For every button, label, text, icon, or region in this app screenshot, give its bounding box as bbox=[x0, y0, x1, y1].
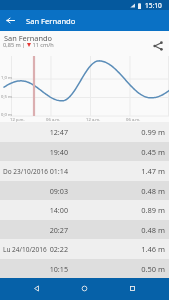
button[interactable]: 09:03 bbox=[0, 181, 169, 201]
staticText: 0.48 m bbox=[141, 186, 165, 196]
staticText: 1.46 m bbox=[141, 244, 165, 254]
button[interactable]: 19:40 bbox=[0, 142, 169, 162]
button[interactable]: Share bbox=[147, 35, 169, 57]
staticText: San Fernando bbox=[26, 16, 76, 26]
button[interactable]: 20:27 bbox=[0, 220, 169, 240]
button[interactable]: Back bbox=[20, 278, 52, 299]
staticText: 0.48 m bbox=[141, 225, 165, 235]
button[interactable]: 14:00 bbox=[0, 200, 169, 220]
staticText: 09:03 bbox=[0, 186, 68, 196]
staticText: 20:27 bbox=[0, 225, 68, 235]
staticText: 10:15 bbox=[0, 264, 68, 274]
staticText: 1.47 m bbox=[141, 166, 165, 176]
staticText: 0,85 m | bbox=[3, 41, 27, 49]
button[interactable]: 12:47 bbox=[0, 122, 169, 142]
staticText: Do 23/10/2016 bbox=[3, 167, 48, 176]
staticText: 12 a.m. bbox=[86, 117, 101, 123]
staticText: 0.45 m bbox=[141, 147, 165, 157]
staticText: 02:22 bbox=[0, 244, 68, 254]
button[interactable]: 10:15 bbox=[0, 259, 169, 279]
staticText: 0.50 m bbox=[141, 264, 165, 274]
staticText: Lu 24/10/2016 bbox=[3, 245, 47, 254]
staticText: 06 a.m. bbox=[126, 117, 141, 123]
staticText: 12:47 bbox=[0, 127, 68, 137]
staticText: 0.99 m bbox=[141, 127, 165, 137]
staticText: 06 a.m. bbox=[46, 117, 61, 123]
staticText: 19:40 bbox=[0, 147, 68, 157]
button[interactable]: Back bbox=[0, 10, 21, 31]
staticText: 1,0 m bbox=[1, 75, 12, 81]
staticText: 12 p.m. bbox=[10, 117, 25, 123]
staticText: 11 cm/h bbox=[31, 41, 54, 49]
button[interactable]: Home bbox=[68, 278, 100, 299]
button[interactable]: Lu 24/10/2016 bbox=[0, 239, 169, 259]
staticText: 0,0 m bbox=[1, 112, 12, 118]
staticText: 01:14 bbox=[0, 166, 68, 176]
staticText: 0.89 m bbox=[141, 205, 165, 215]
staticText: 0,5 m bbox=[1, 94, 12, 100]
staticText: 14:00 bbox=[0, 205, 68, 215]
button[interactable]: Recent apps bbox=[116, 278, 148, 299]
staticText: San Fernando bbox=[4, 33, 53, 43]
staticText: 15:10 bbox=[145, 1, 162, 10]
button[interactable]: Do 23/10/2016 bbox=[0, 161, 169, 181]
